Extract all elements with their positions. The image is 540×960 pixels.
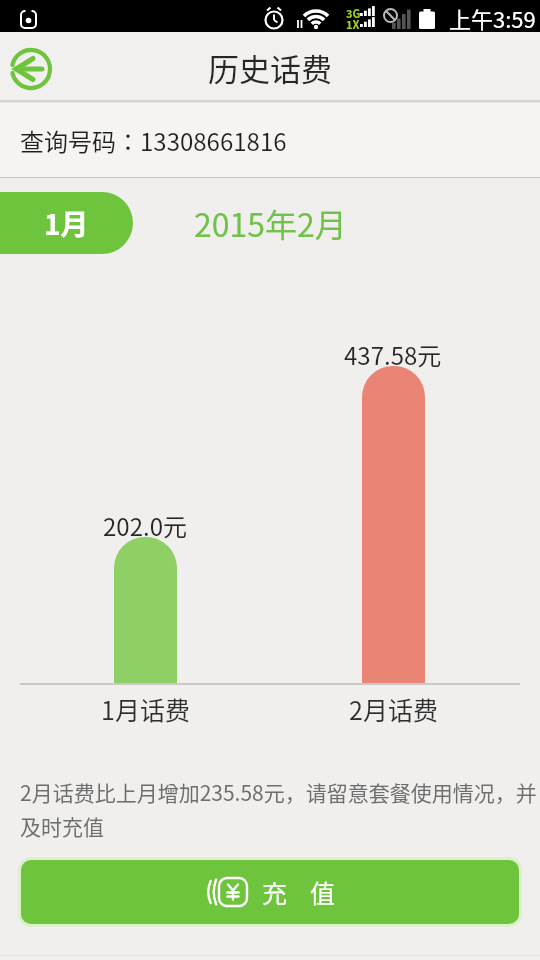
button[interactable] (4, 42, 58, 96)
staticText: 历史话费 (208, 45, 332, 90)
staticText: 1X (346, 16, 360, 32)
staticText: 2015年2月 (194, 200, 347, 246)
staticText: 查询号码：13308661816 (20, 123, 287, 158)
staticText: 202.0元 (103, 508, 187, 543)
button[interactable]: 充 (21, 860, 519, 924)
staticText: 437.58元 (344, 337, 442, 372)
button[interactable]: 1月 (0, 192, 133, 254)
staticText: 1月 (44, 203, 89, 244)
staticText: 上午3:59 (449, 2, 536, 34)
staticText: 2月话费比上月增加235.58元，请留意套餐使用情况，并 (20, 777, 537, 807)
button[interactable]: 2015年2月 (160, 192, 380, 254)
staticText: 1月话费 (101, 691, 190, 727)
staticText: 3G (346, 5, 361, 21)
staticText: 2月话费 (349, 691, 438, 727)
staticText: 及时充值 (20, 811, 104, 841)
staticText: 充 (262, 874, 288, 910)
staticText: 值 (310, 874, 336, 910)
